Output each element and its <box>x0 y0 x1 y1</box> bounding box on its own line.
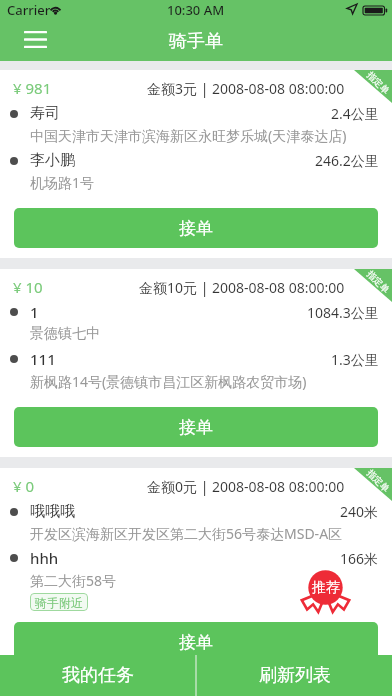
staticText: hhh <box>30 548 340 568</box>
staticText: 寿司 <box>30 104 331 123</box>
staticText: 1.3公里 <box>331 350 379 369</box>
staticText: 金额10元 | 2008-08-08 08:00:00 <box>139 278 345 297</box>
staticText: 第二大街58号 <box>30 571 379 590</box>
staticText: 机场路1号 <box>30 173 379 192</box>
staticText: ¥ 10 <box>13 277 139 297</box>
staticText: 接单 <box>179 218 213 239</box>
staticText: ¥ 981 <box>13 78 147 98</box>
staticText: 哦哦哦 <box>30 502 340 521</box>
staticText: 1084.3公里 <box>307 303 379 322</box>
staticText: 李小鹏 <box>30 151 315 170</box>
staticText: 10:30 AM <box>167 1 225 19</box>
staticText: 240米 <box>340 502 379 521</box>
staticText: 166米 <box>340 549 379 568</box>
staticText: 接单 <box>179 417 213 438</box>
button[interactable]: Menu <box>0 22 58 61</box>
staticText: 2.4公里 <box>331 104 379 123</box>
staticText: 开发区滨海新区开发区第二大街56号泰达MSD-A区 <box>30 524 379 543</box>
staticText: 金额0元 | 2008-08-08 08:00:00 <box>147 477 345 496</box>
staticText: Carrier <box>7 1 51 19</box>
staticText: 骑手附近 <box>35 595 83 610</box>
button[interactable]: 刷新列表 <box>197 655 392 696</box>
button[interactable]: 我的任务 <box>0 655 195 696</box>
staticText: 246.2公里 <box>315 151 379 170</box>
staticText: 景德镇七中 <box>30 325 379 343</box>
staticText: 1 <box>30 302 307 322</box>
staticText: 骑手单 <box>169 30 223 53</box>
button[interactable]: 接单 <box>14 208 378 248</box>
staticText: 指定单 <box>365 69 392 96</box>
staticText: 指定单 <box>365 268 392 295</box>
staticText: 111 <box>30 349 331 369</box>
staticText: 中国天津市天津市滨海新区永旺梦乐城(天津泰达店) <box>30 126 379 145</box>
staticText: ¥ 0 <box>13 476 147 496</box>
staticText: 我的任务 <box>62 664 134 687</box>
button[interactable]: 接单 <box>14 622 378 662</box>
staticText: 指定单 <box>365 467 392 494</box>
staticText: 推荐 <box>312 579 340 597</box>
staticText: 刷新列表 <box>259 664 331 687</box>
staticText: 金额3元 | 2008-08-08 08:00:00 <box>147 79 345 98</box>
staticText: 新枫路14号(景德镇市昌江区新枫路农贸市场) <box>30 372 379 391</box>
button[interactable]: 接单 <box>14 407 378 447</box>
staticText: 接单 <box>179 632 213 653</box>
